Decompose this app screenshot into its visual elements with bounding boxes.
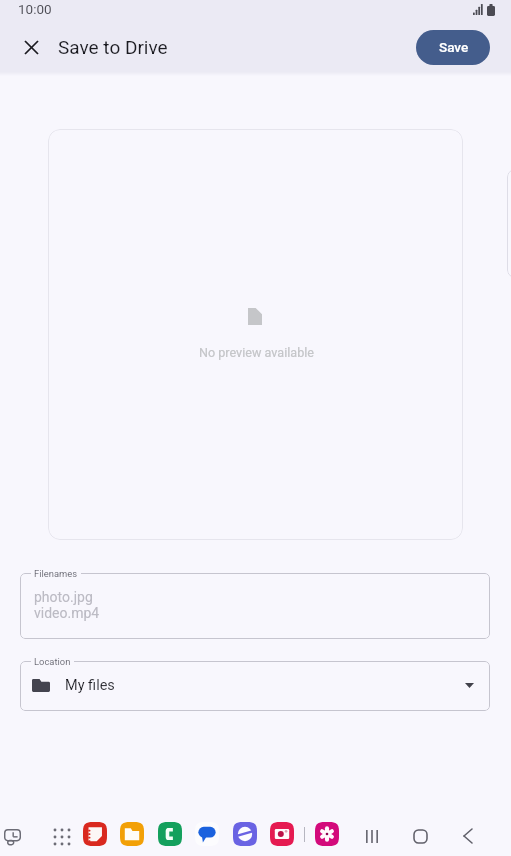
button[interactable]: DeX mode: [0, 813, 25, 856]
staticText: photo.jpg: [34, 589, 93, 605]
button[interactable]: photo.jpg: [20, 573, 490, 639]
staticText: Save: [439, 39, 469, 55]
staticText: video.mp4: [34, 605, 100, 621]
staticText: 10:00: [18, 1, 52, 17]
button[interactable]: Back: [446, 814, 490, 856]
button[interactable]: Recent apps: [350, 814, 394, 856]
staticText: Location: [34, 656, 71, 667]
staticText: Save to Drive: [58, 36, 168, 58]
button[interactable]: App: [310, 812, 344, 856]
button[interactable]: Close: [9, 25, 53, 69]
button[interactable]: App: [115, 812, 149, 856]
button[interactable]: Save: [416, 30, 490, 65]
staticText: Filenames: [34, 568, 78, 579]
button[interactable]: My files: [20, 661, 490, 711]
button[interactable]: App: [265, 812, 299, 856]
button[interactable]: Home: [398, 814, 442, 856]
button[interactable]: App: [190, 812, 224, 856]
button[interactable]: App: [153, 812, 187, 856]
button[interactable]: App: [78, 812, 112, 856]
staticText: My files: [65, 677, 115, 694]
staticText: No preview available: [199, 345, 314, 360]
button[interactable]: App: [228, 812, 262, 856]
button[interactable]: All apps: [44, 813, 79, 856]
